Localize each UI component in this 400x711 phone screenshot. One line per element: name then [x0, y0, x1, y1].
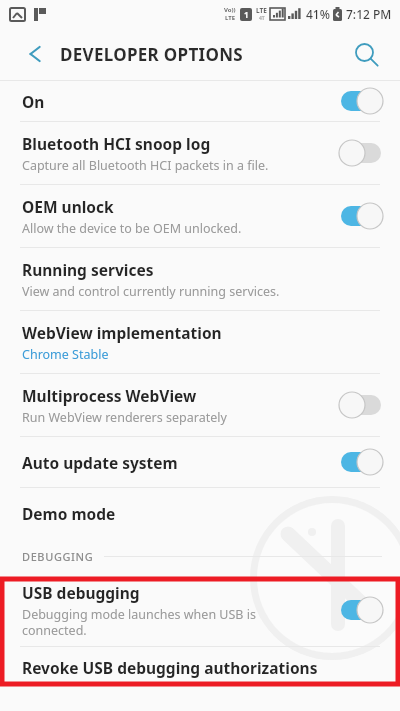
button[interactable]: Toggle on — [338, 596, 384, 624]
button[interactable]: Auto update system — [0, 437, 400, 487]
staticText: LTE — [256, 6, 267, 15]
staticText: Running services — [22, 259, 154, 280]
button[interactable]: On — [0, 81, 400, 121]
staticText: Debugging mode launches when USB is conn… — [22, 606, 256, 638]
staticText: 41% — [306, 6, 330, 22]
button[interactable]: Toggle on — [338, 202, 384, 230]
staticText: 4T — [259, 15, 265, 22]
staticText: Vo)) — [224, 6, 236, 14]
staticText: DEVELOPER OPTIONS — [60, 43, 243, 66]
button[interactable]: Toggle off — [338, 391, 384, 419]
staticText: 1 — [244, 9, 249, 20]
staticText: LTE — [225, 14, 236, 22]
staticText: WebView implementation — [22, 322, 222, 343]
button[interactable]: WebView implementation — [0, 311, 400, 373]
staticText: DEBUGGING — [22, 549, 94, 564]
staticText: Allow the device to be OEM unlocked. — [22, 220, 242, 237]
button[interactable]: Toggle off — [338, 139, 384, 167]
button[interactable]: Running services — [0, 248, 400, 310]
staticText: Auto update system — [22, 452, 178, 473]
staticText: Run WebView renderers separately — [22, 409, 227, 426]
button[interactable]: Multiprocess WebView — [0, 374, 400, 436]
staticText: Demo mode — [22, 503, 116, 524]
staticText: Capture all Bluetooth HCI packets in a f… — [22, 157, 269, 174]
button[interactable]: Toggle on — [338, 87, 384, 115]
staticText: Multiprocess WebView — [22, 385, 197, 406]
button[interactable]: Revoke USB debugging authorizations — [0, 647, 400, 687]
button[interactable]: Back — [12, 34, 52, 74]
staticText: USB debugging — [22, 582, 140, 603]
staticText: 7:12 PM — [346, 6, 392, 22]
button[interactable]: Toggle on — [338, 448, 384, 476]
staticText: Bluetooth HCI snoop log — [22, 133, 211, 154]
staticText: Revoke USB debugging authorizations — [22, 657, 318, 678]
button[interactable]: OEM unlock — [0, 185, 400, 247]
staticText: View and control currently running servi… — [22, 283, 280, 300]
button[interactable]: Bluetooth HCI snoop log — [0, 122, 400, 184]
button[interactable]: Search — [346, 34, 386, 74]
staticText: On — [22, 91, 45, 112]
staticText: Chrome Stable — [22, 346, 109, 363]
staticText: OEM unlock — [22, 196, 114, 217]
button[interactable]: Demo mode — [0, 488, 400, 538]
button[interactable]: USB debugging — [0, 574, 400, 646]
